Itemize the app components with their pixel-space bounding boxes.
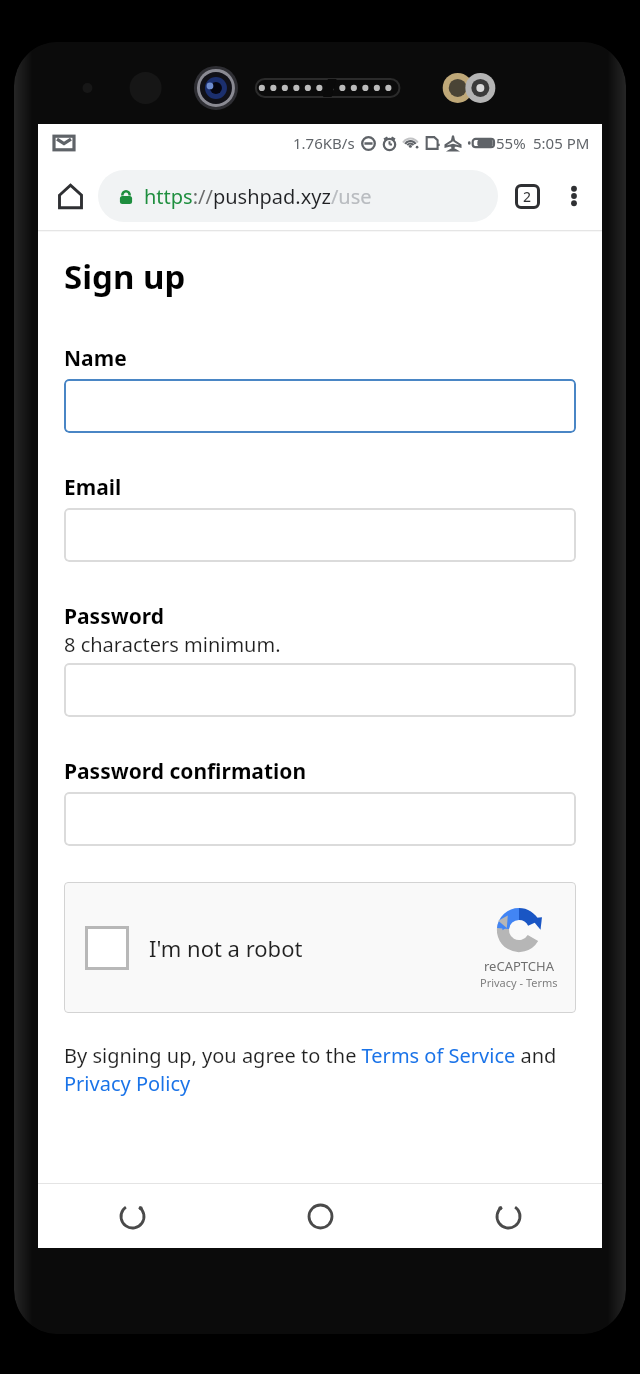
staticText: 2 (523, 187, 532, 206)
button[interactable]: Recent apps (38, 1184, 226, 1248)
staticText: Name (64, 344, 127, 373)
staticText: 1.76KB/s (293, 133, 355, 153)
button[interactable] (64, 663, 576, 717)
button[interactable]: Home (226, 1184, 414, 1248)
button[interactable] (64, 379, 576, 433)
button[interactable]: I'm not a robot checkbox (85, 926, 129, 970)
button[interactable]: Privacy - Terms (480, 975, 558, 990)
staticText: https://pushpad.xyz/use (144, 183, 372, 210)
staticText: Password confirmation (64, 757, 307, 786)
staticText: Password (64, 602, 165, 631)
button[interactable]: More options (550, 172, 598, 220)
staticText: 8 characters minimum. (64, 631, 281, 658)
button[interactable] (64, 792, 576, 846)
button[interactable]: By signing up, you agree to the Terms of… (64, 1042, 576, 1097)
button[interactable]: I'm not a robot (149, 933, 303, 963)
staticText: Sign up (64, 254, 186, 299)
button[interactable]: Home (46, 172, 94, 220)
staticText: Email (64, 473, 122, 502)
button[interactable]: Back (414, 1184, 602, 1248)
button[interactable]: https://pushpad.xyz/use (98, 170, 498, 222)
staticText: 55% (496, 133, 526, 153)
staticText: reCAPTCHA (484, 957, 554, 975)
button[interactable] (64, 508, 576, 562)
button[interactable]: Tabs, 2 open (504, 173, 550, 219)
staticText: 5:05 PM (533, 133, 590, 153)
